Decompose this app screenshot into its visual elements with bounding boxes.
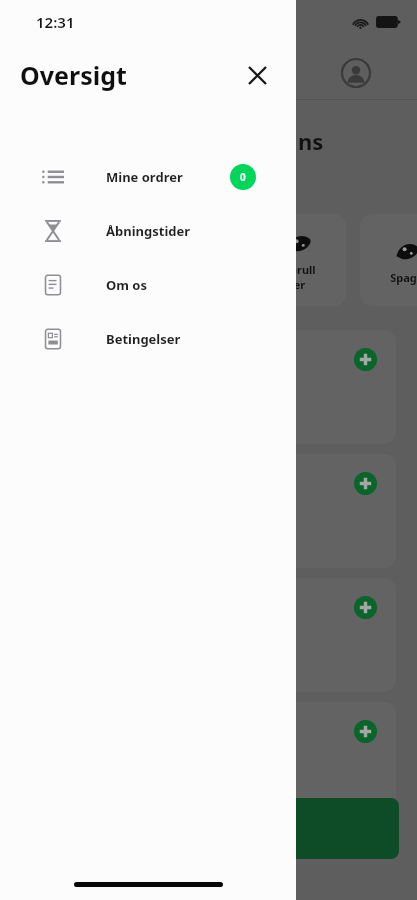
button[interactable]: [296, 0, 417, 900]
button[interactable]: Add to cart: [228, 454, 396, 568]
staticText: Betingelser: [106, 330, 181, 348]
button[interactable]: Add to cart: [228, 330, 396, 444]
staticText: Oversigt: [20, 58, 127, 92]
button[interactable]: Add to cart: [228, 578, 396, 692]
button[interactable]: Add to cart: [354, 596, 377, 619]
button[interactable]: Add to cart: [354, 472, 377, 495]
button[interactable]: Add to cart: [354, 720, 377, 743]
button[interactable]: Åbningstider: [0, 204, 296, 258]
staticText: Spagh: [390, 270, 417, 285]
button[interactable]: Add to cart: [354, 348, 377, 371]
button[interactable]: Om os: [0, 258, 296, 312]
button[interactable]: [250, 798, 399, 859]
staticText: Om os: [106, 276, 147, 294]
staticText: Åbningstider: [106, 222, 191, 240]
staticText: 0: [240, 170, 246, 184]
button[interactable]: Add to cart: [228, 702, 396, 816]
staticText: 12:31: [36, 12, 75, 32]
button[interactable]: Mine ordrer: [0, 150, 296, 204]
button[interactable]: abrull er: [252, 214, 346, 306]
button[interactable]: Spagh: [360, 214, 417, 306]
staticText: ns: [298, 126, 324, 156]
button[interactable]: Close: [240, 58, 274, 92]
staticText: abrull er: [283, 262, 316, 292]
staticText: Mine ordrer: [106, 168, 183, 186]
button[interactable]: Betingelser: [0, 312, 296, 366]
button[interactable]: Account: [342, 59, 370, 87]
